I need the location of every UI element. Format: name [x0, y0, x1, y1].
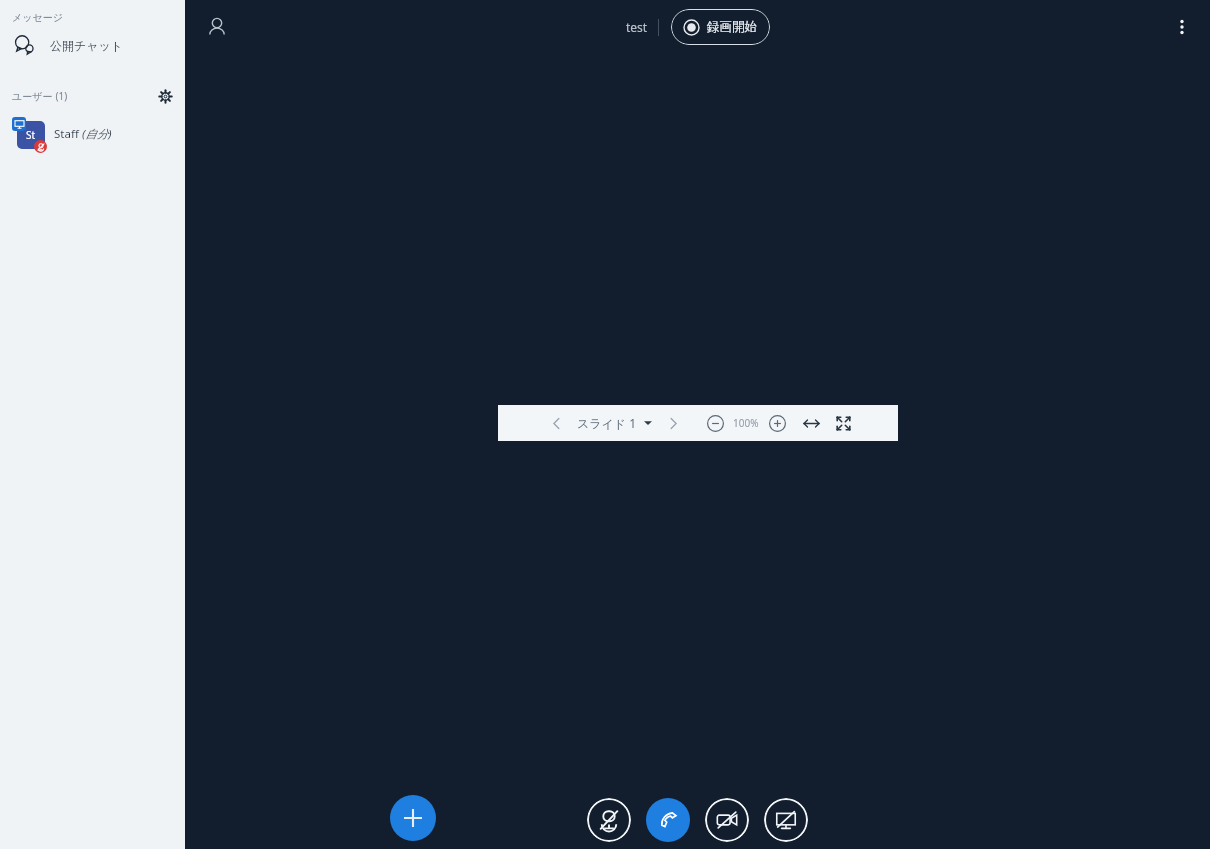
button[interactable]: Leave audio [646, 798, 690, 842]
button[interactable]: Next slide [658, 408, 688, 438]
staticText: 100% [733, 416, 759, 430]
staticText: スライド 1 [577, 415, 637, 431]
staticText: test [626, 19, 648, 35]
button[interactable]: Add [390, 795, 436, 841]
button[interactable]: Stop screen share [764, 798, 808, 842]
button[interactable]: Select slide [644, 419, 652, 427]
button[interactable]: Fullscreen [830, 410, 856, 436]
button[interactable]: Fit to width [798, 410, 824, 436]
button[interactable]: Zoom in [764, 410, 790, 436]
staticText: (1) [53, 89, 68, 103]
staticText: 録画開始 [707, 19, 757, 35]
staticText: ユーザー [12, 90, 53, 103]
button[interactable]: Previous slide [541, 408, 571, 438]
button[interactable]: Start video [705, 798, 749, 842]
staticText: St [26, 128, 36, 142]
button[interactable]: Settings [155, 86, 175, 106]
button[interactable]: 録画開始 [671, 9, 770, 45]
staticText: 公開チャット [50, 38, 124, 53]
button[interactable]: More options [1167, 12, 1197, 42]
button[interactable]: 公開チャット [0, 30, 185, 60]
button[interactable]: Unmute [587, 798, 631, 842]
staticText: メッセージ [12, 11, 63, 24]
button[interactable]: St [0, 116, 185, 152]
button[interactable]: User [201, 11, 233, 43]
staticText: Staff [54, 126, 82, 142]
button[interactable]: Zoom out [702, 410, 728, 436]
staticText: (自分) [82, 126, 112, 142]
